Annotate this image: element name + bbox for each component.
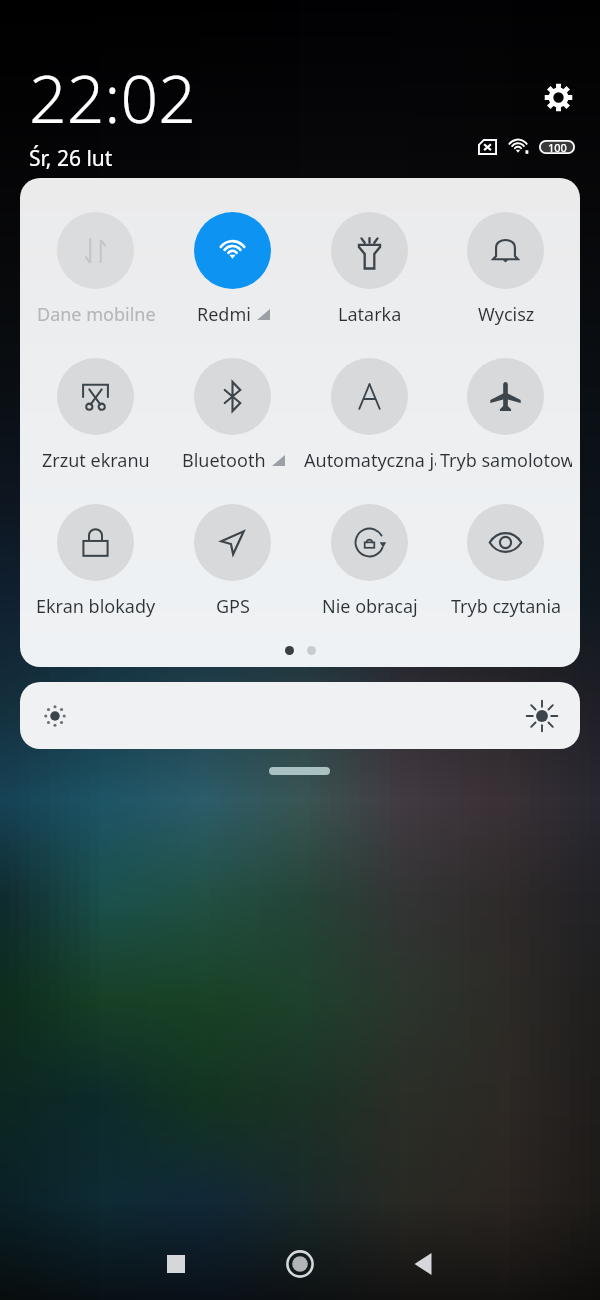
staticText: Bluetooth <box>182 448 266 472</box>
button[interactable]: Automatyczna jasność <box>301 358 438 472</box>
staticText: Śr, 26 lut <box>29 144 113 173</box>
staticText: 22:02 <box>29 52 196 142</box>
staticText: Zrzut ekranu <box>42 448 150 472</box>
button[interactable]: Bluetooth <box>164 358 301 472</box>
button[interactable]: Back <box>383 1224 463 1300</box>
staticText: Wycisz <box>478 302 535 326</box>
button[interactable]: Tryb czytania <box>438 504 573 618</box>
button[interactable]: Latarka <box>301 212 438 326</box>
staticText: Latarka <box>338 302 402 326</box>
staticText: Automatyczna jasność <box>304 448 436 472</box>
button[interactable]: Low brightness <box>20 682 580 749</box>
staticText: Dane mobilne <box>37 302 156 326</box>
staticText: Ekran blokady <box>36 594 156 618</box>
other: Low brightness <box>41 702 69 730</box>
button[interactable]: Settings <box>542 81 575 114</box>
staticText: Nie obracaj <box>322 594 418 618</box>
staticText: Tryb czytania <box>451 594 562 618</box>
button[interactable]: GPS <box>164 504 301 618</box>
button[interactable]: Home <box>260 1224 340 1300</box>
staticText: Redmi <box>197 302 251 326</box>
button[interactable]: Zrzut ekranu <box>27 358 164 472</box>
staticText: GPS <box>216 594 250 618</box>
button[interactable]: Redmi <box>164 212 301 326</box>
button[interactable]: Recents <box>136 1224 216 1300</box>
other: High brightness <box>525 699 559 733</box>
button[interactable]: Nie obracaj <box>301 504 438 618</box>
button[interactable]: Tryb samolotowy <box>438 358 573 472</box>
staticText: Tryb samolotowy <box>440 448 572 472</box>
button[interactable]: Dane mobilne <box>27 212 164 326</box>
button[interactable]: Wycisz <box>438 212 573 326</box>
button[interactable]: Ekran blokady <box>27 504 164 618</box>
staticText: 100 <box>548 140 567 154</box>
